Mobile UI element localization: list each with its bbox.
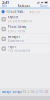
staticText: 8,412 items — [8, 29, 25, 33]
button[interactable]: Pages — [0, 44, 50, 53]
staticText: Attachments — [8, 39, 24, 43]
button[interactable]: Keynote — [0, 14, 50, 24]
button[interactable]: Manage Storage — [1, 90, 22, 94]
staticText: iCloud Backup — [6, 10, 26, 13]
staticText: Backups — [17, 4, 29, 8]
staticText: Done — [40, 4, 48, 8]
button[interactable]: Edit — [2, 4, 7, 8]
staticText: 2:41 — [2, 0, 9, 5]
staticText: Keynote — [8, 15, 19, 19]
button[interactable]: Done — [40, 4, 48, 8]
button[interactable]: Photo Library — [0, 24, 50, 34]
staticText: Messages — [8, 35, 20, 38]
staticText: Pages — [8, 45, 16, 48]
staticText: Photo Library — [8, 25, 26, 29]
staticText: Manage Storage — [1, 90, 22, 94]
staticText: 38.2 GB of 50 GB — [22, 90, 48, 94]
staticText: Edit — [2, 4, 7, 8]
staticText: 24 presentations — [8, 19, 32, 23]
button[interactable]: iCloud Backup — [0, 9, 50, 14]
staticText: Sept 28 · 12:04 — [29, 10, 48, 13]
staticText: 102 documents — [8, 49, 30, 52]
button[interactable]: Messages — [0, 34, 50, 44]
